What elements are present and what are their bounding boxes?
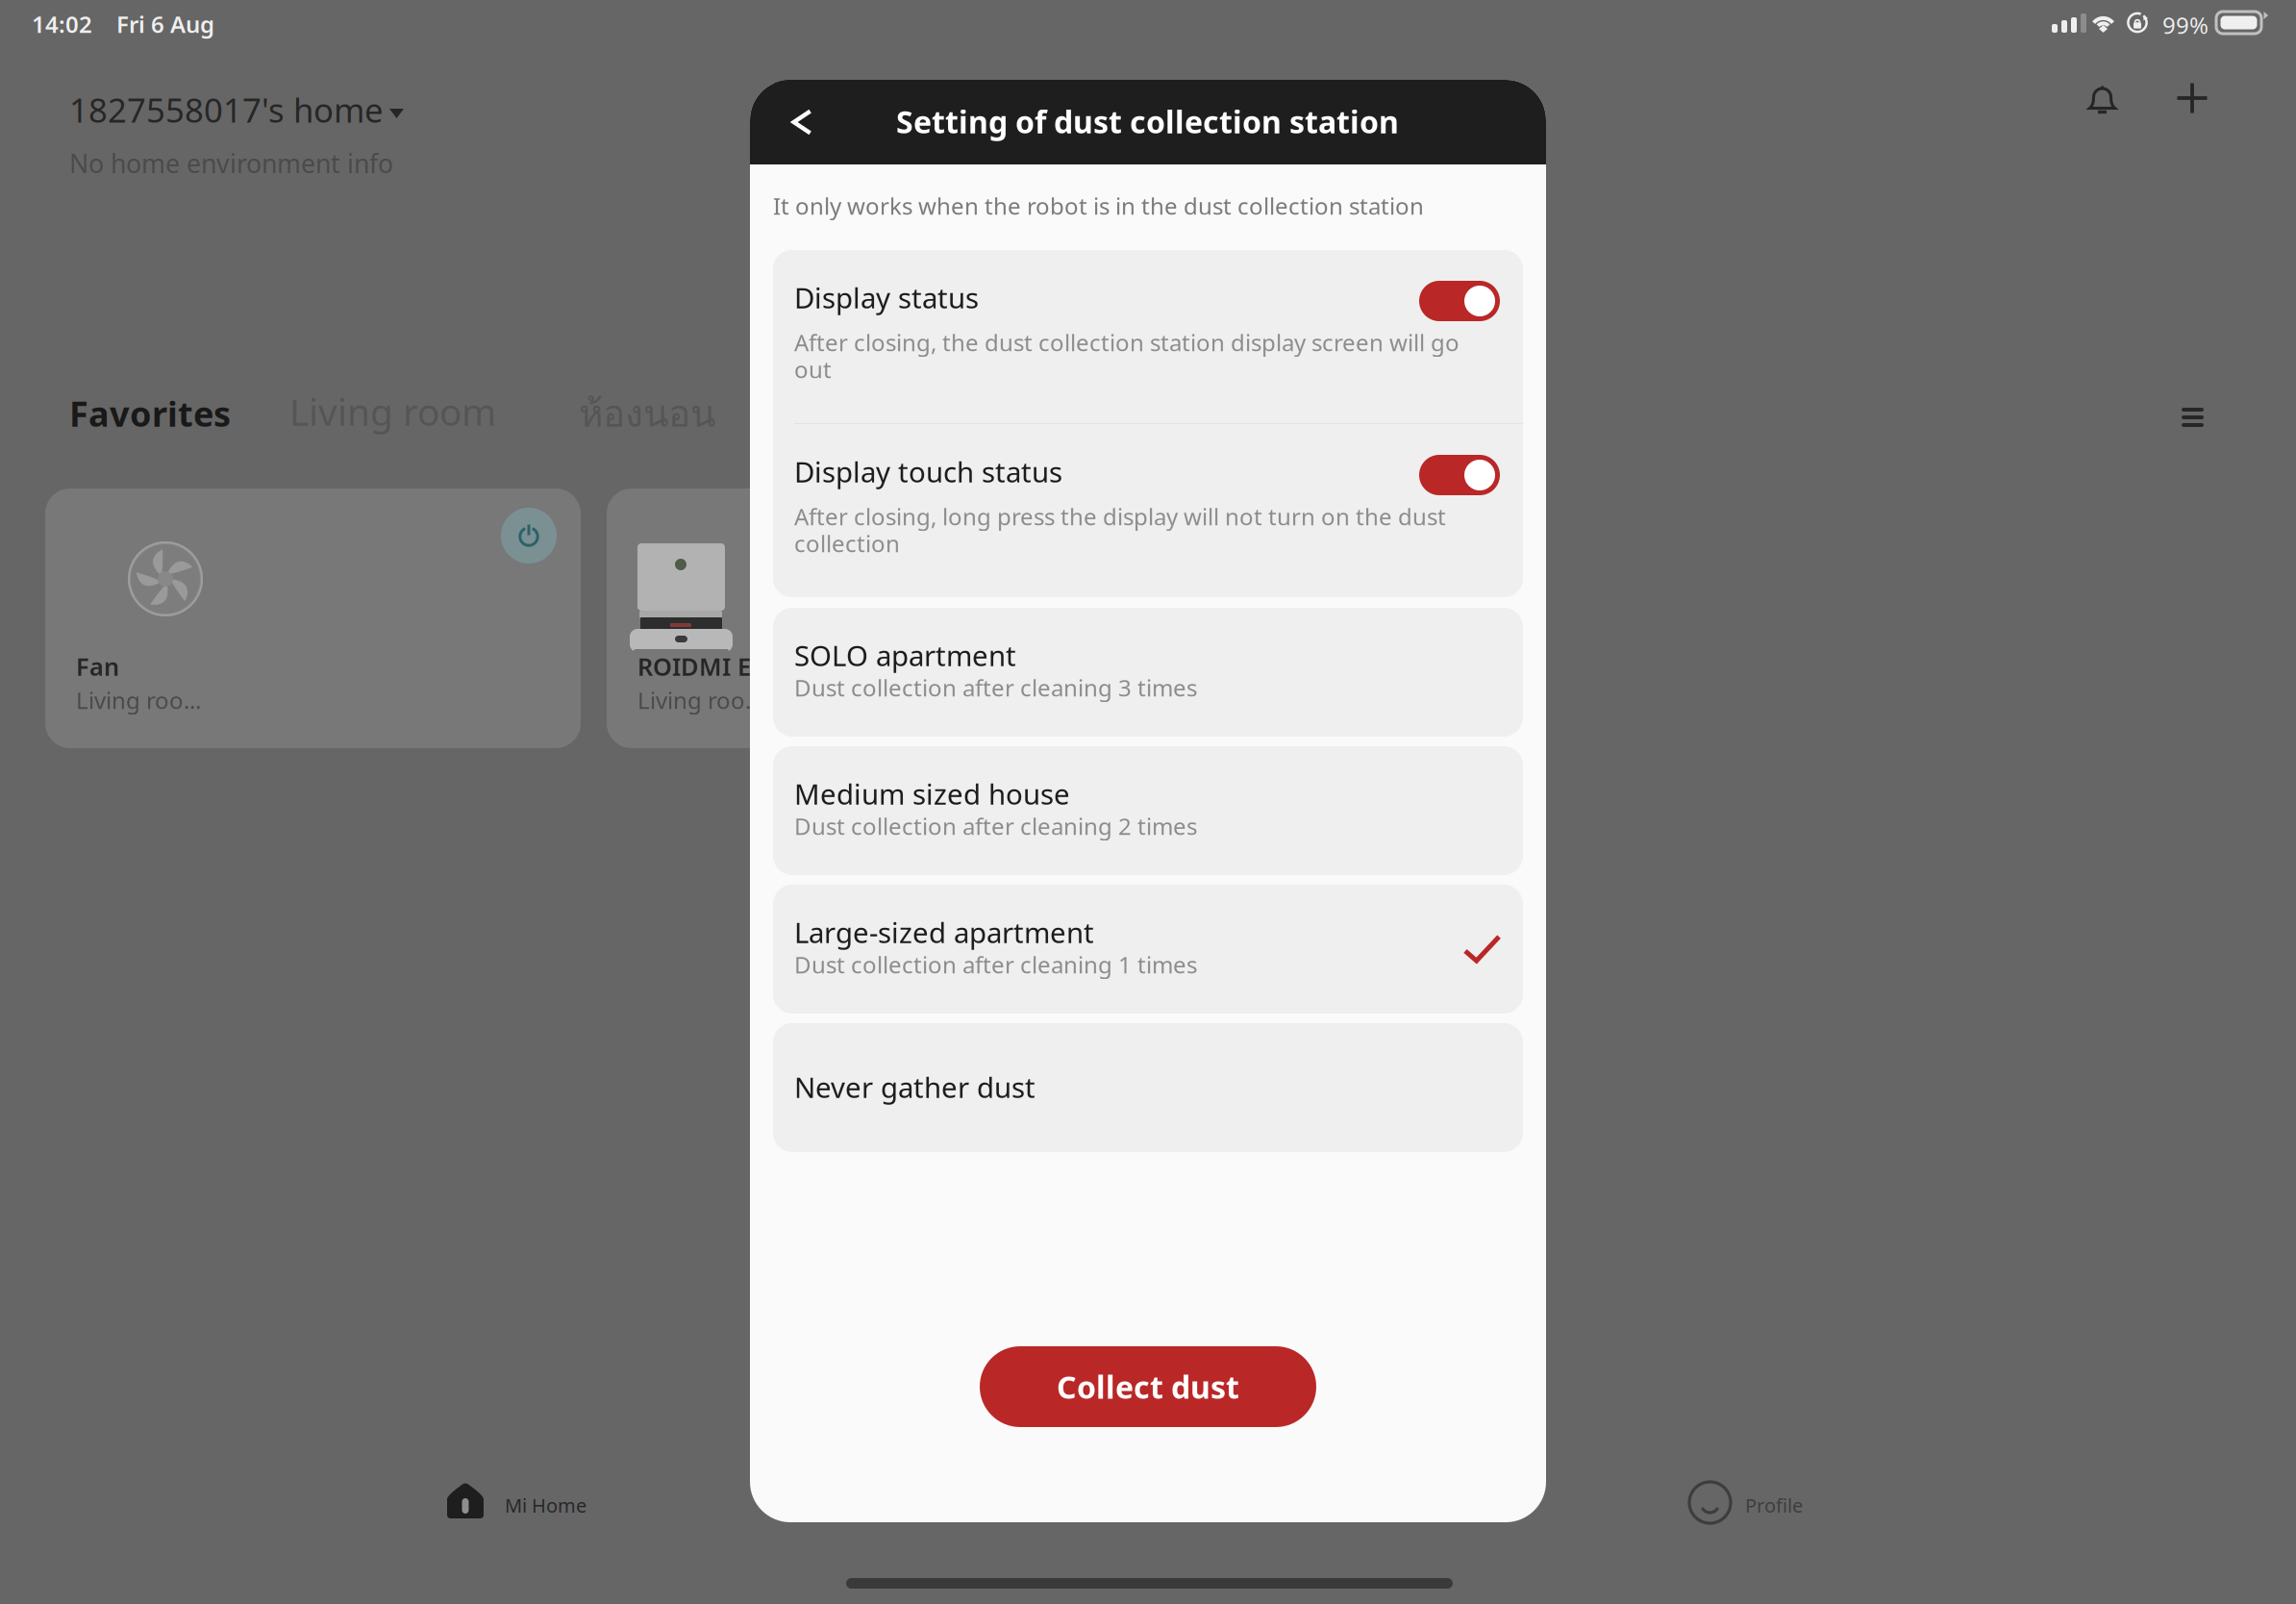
button[interactable]: ห้องนอน	[579, 385, 715, 442]
button[interactable]: Large-sized apartment	[773, 885, 1523, 1014]
staticText: Favorites	[69, 390, 231, 436]
staticText: Dust collection after cleaning 2 times	[794, 811, 1197, 841]
button[interactable]: Profile	[1689, 1482, 1843, 1532]
button[interactable]: Fan	[45, 489, 581, 748]
staticText: Fan	[76, 650, 119, 682]
staticText: ห้องนอน	[579, 385, 715, 442]
button[interactable]: Edit rooms	[2182, 408, 2204, 427]
staticText: Display status	[794, 279, 979, 316]
staticText: SOLO apartment	[794, 637, 1016, 674]
staticText: Collect dust	[1057, 1366, 1239, 1407]
button[interactable]: Toggle Fan power	[501, 508, 557, 564]
button[interactable]: ROIDMI E...	[607, 489, 1142, 748]
staticText: Living roo...	[637, 685, 762, 715]
staticText: Dust collection after cleaning 1 times	[794, 949, 1197, 980]
button[interactable]: Collect dust	[980, 1346, 1316, 1427]
staticText: Display touch status	[794, 453, 1062, 490]
staticText: out	[794, 354, 832, 385]
button[interactable]: Mi Home	[445, 1482, 637, 1532]
button[interactable]: Display status	[773, 250, 1523, 423]
staticText: Profile	[1745, 1492, 1803, 1518]
staticText: Dust collection after cleaning 3 times	[794, 672, 1197, 703]
button[interactable]: Display touch status	[773, 424, 1523, 597]
button[interactable]: Never gather dust	[773, 1023, 1523, 1152]
button[interactable]: Back	[774, 80, 832, 164]
button[interactable]: Medium sized house	[773, 746, 1523, 875]
button[interactable]: Living room	[289, 387, 496, 436]
staticText: After closing, long press the display wi…	[794, 501, 1446, 532]
button[interactable]: Add device	[2176, 82, 2209, 114]
staticText: 14:02	[32, 9, 92, 39]
staticText: No home environment info	[69, 146, 393, 180]
staticText: Never gather dust	[794, 1068, 1036, 1106]
staticText: 1827558017's home	[69, 88, 384, 132]
button[interactable]: SOLO apartment	[773, 608, 1523, 737]
staticText: Fri 6 Aug	[116, 9, 214, 39]
button[interactable]: Favorites	[69, 390, 231, 436]
staticText: Setting of dust collection station	[896, 101, 1399, 142]
staticText: collection	[794, 528, 900, 559]
staticText: ROIDMI E...	[637, 650, 771, 682]
button[interactable]: Notifications	[2087, 82, 2117, 114]
staticText: 99%	[2162, 10, 2209, 40]
staticText: After closing, the dust collection stati…	[794, 327, 1460, 358]
staticText: It only works when the robot is in the d…	[773, 190, 1424, 221]
staticText: Medium sized house	[794, 775, 1070, 813]
staticText: Living room	[289, 387, 496, 436]
staticText: Mi Home	[505, 1492, 586, 1518]
staticText: Living roo...	[76, 685, 201, 715]
staticText: Large-sized apartment	[794, 914, 1094, 951]
